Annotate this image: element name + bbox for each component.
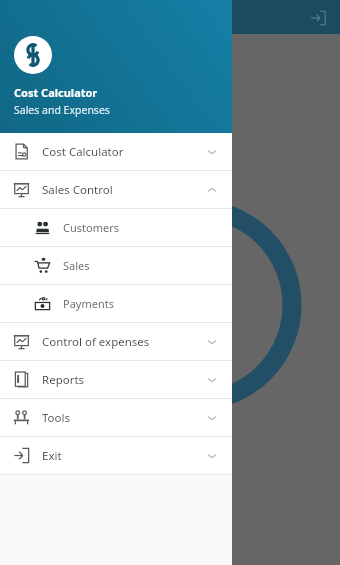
staticText: Sales: [63, 258, 90, 273]
button[interactable]: Cost Calculator: [0, 133, 232, 170]
button[interactable]: Sales Control: [0, 171, 232, 208]
staticText: Control of expenses: [42, 334, 150, 350]
button[interactable]: Payments: [0, 285, 232, 322]
staticText: Sales and Expenses: [14, 103, 110, 117]
button[interactable]: Customers: [0, 209, 232, 246]
button[interactable]: Tools: [0, 399, 232, 436]
staticText: Cost Calculator: [14, 85, 98, 100]
button[interactable]: Exit: [0, 437, 232, 474]
staticText: Sales Control: [42, 182, 113, 198]
staticText: Exit: [42, 448, 62, 464]
staticText: Reports: [42, 372, 85, 388]
button[interactable]: Control of expenses: [0, 323, 232, 360]
button[interactable]: Logout: [306, 6, 330, 30]
staticText: Payments: [63, 296, 114, 311]
button[interactable]: Reports: [0, 361, 232, 398]
staticText: Customers: [63, 220, 119, 235]
staticText: Tools: [42, 410, 70, 426]
staticText: Cost Calculator: [42, 144, 124, 160]
button[interactable]: Sales: [0, 247, 232, 284]
